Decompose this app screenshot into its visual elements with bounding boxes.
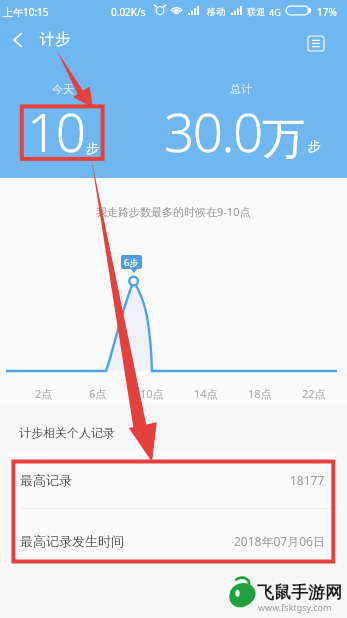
staticText: 0.02K/s: [111, 5, 146, 19]
button[interactable]: 记录: [296, 23, 336, 63]
staticText: 上午10:15: [3, 5, 49, 19]
staticText: 6步: [124, 256, 139, 268]
staticText: 22点: [302, 386, 326, 401]
staticText: 计步相关个人记录: [19, 425, 115, 440]
staticText: 我走路步数最多的时候在9-10点: [96, 204, 251, 219]
button[interactable]: 返回: [1, 24, 33, 56]
staticText: 计步: [40, 30, 70, 49]
staticText: www.fsktgsy.com: [258, 601, 332, 613]
staticText: 6点: [89, 386, 107, 401]
staticText: 万: [262, 112, 305, 166]
staticText: 最高记录: [20, 472, 72, 488]
staticText: 10: [27, 95, 85, 167]
staticText: 2点: [35, 386, 53, 401]
staticText: 今天: [52, 82, 74, 96]
staticText: 飞鼠手游网: [257, 582, 342, 603]
staticText: 18177: [290, 472, 325, 488]
staticText: 14点: [194, 386, 218, 401]
staticText: 30.0: [164, 95, 262, 167]
staticText: 18点: [248, 386, 272, 401]
staticText: 最高记录发生时间: [20, 533, 124, 549]
staticText: 2018年07月06日: [234, 533, 325, 549]
staticText: 步: [86, 140, 99, 156]
staticText: 移动: [207, 6, 225, 17]
staticText: 步: [308, 138, 321, 154]
staticText: 17%: [317, 5, 337, 19]
staticText: 总计: [230, 82, 252, 96]
button[interactable]: 最高记录: [10, 452, 337, 508]
staticText: 4G: [269, 6, 281, 18]
staticText: 联通: [247, 6, 265, 17]
button[interactable]: 最高记录发生时间: [10, 509, 337, 566]
staticText: 10点: [140, 386, 164, 401]
